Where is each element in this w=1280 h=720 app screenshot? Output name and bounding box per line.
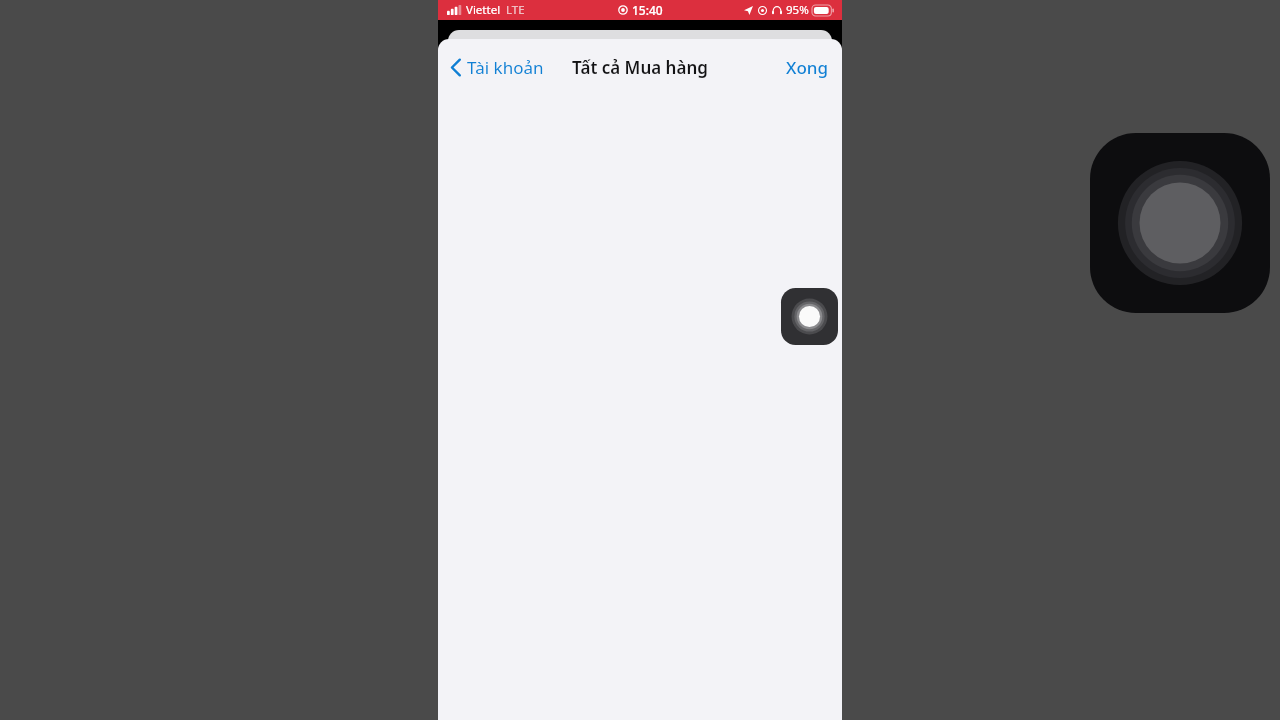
staticText: Tài khoản	[467, 56, 544, 79]
button[interactable]: Xong	[782, 50, 832, 85]
staticText: 95%	[786, 2, 809, 18]
other: Camera lens	[781, 288, 838, 345]
staticText: Tất cả Mua hàng	[572, 56, 708, 79]
staticText: 15:40	[632, 2, 663, 18]
staticText: LTE	[506, 2, 525, 18]
staticText: Xong	[786, 56, 828, 79]
other: Camera lens large	[1090, 133, 1270, 313]
button[interactable]: Tài khoản	[446, 50, 548, 85]
staticText: Viettel	[466, 2, 501, 18]
